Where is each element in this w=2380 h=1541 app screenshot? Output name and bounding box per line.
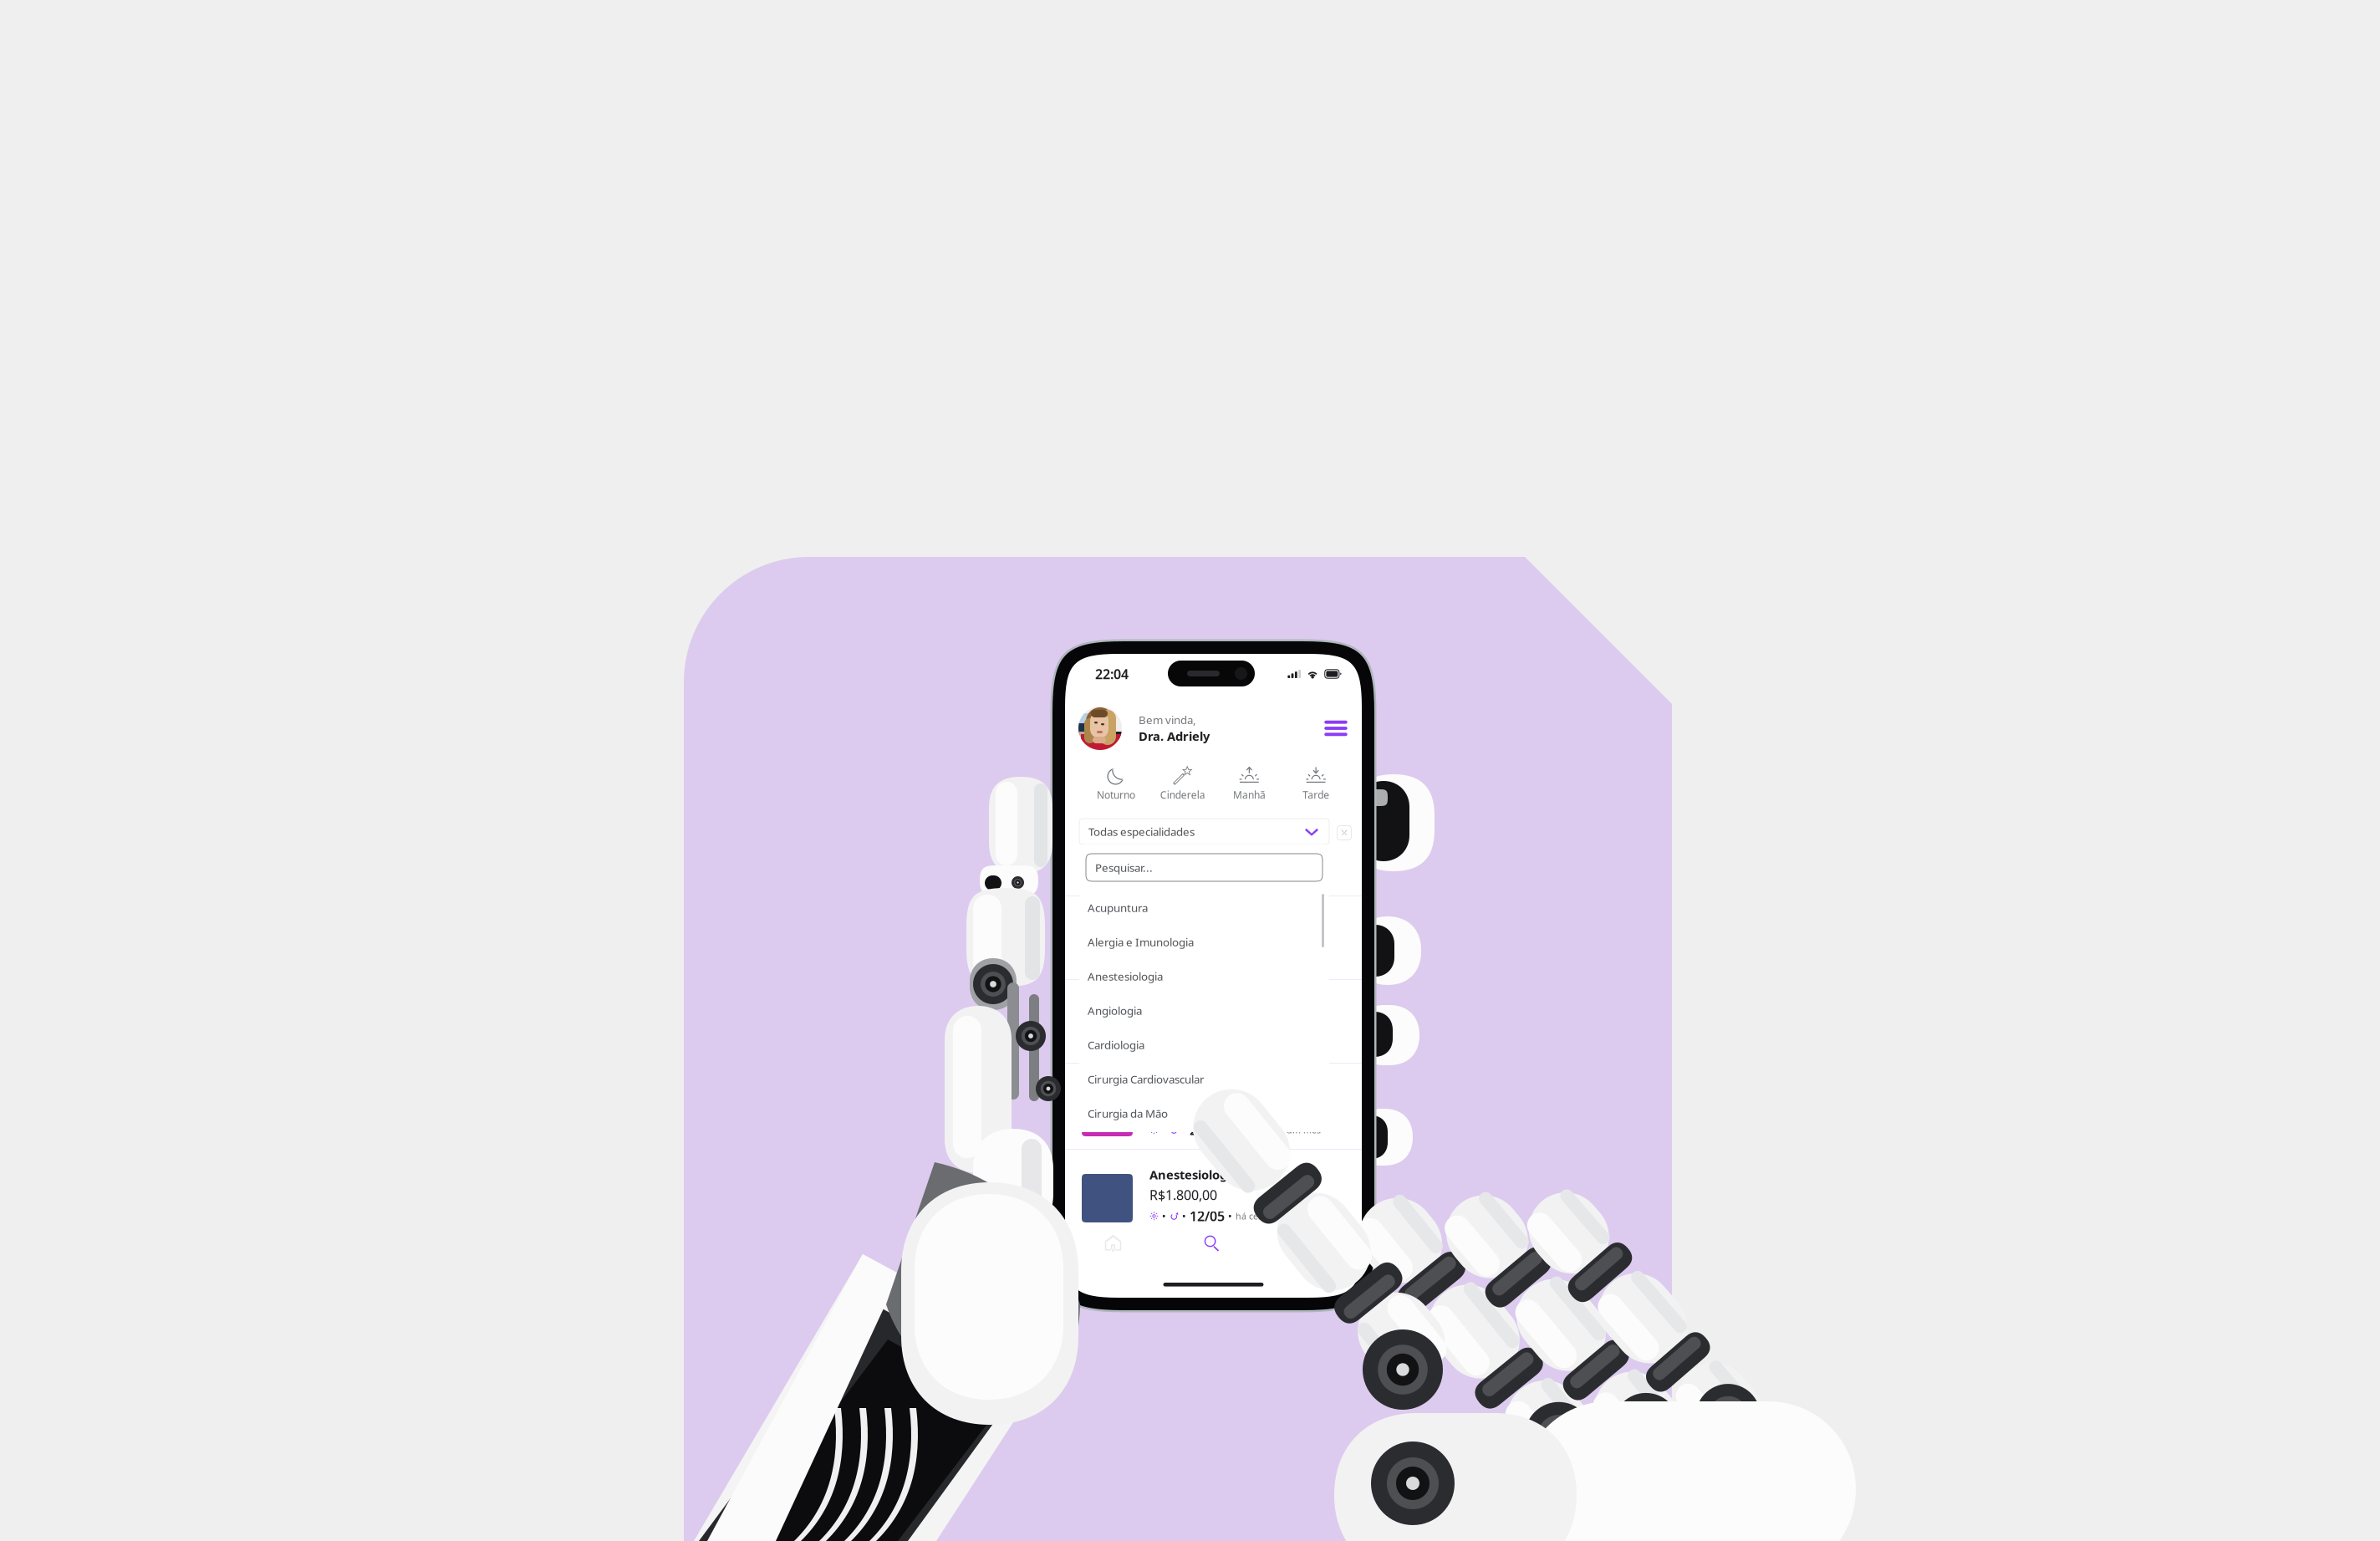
staticText: 20/05 — [1190, 1121, 1225, 1139]
button[interactable]: Clínica Médica — [1065, 812, 1362, 896]
button[interactable]: Buscar — [1203, 1234, 1221, 1252]
button[interactable]: Cardiologia — [1079, 1028, 1329, 1062]
staticText: Cirurgia da Mão — [1088, 1106, 1168, 1121]
staticText: Acupuntura — [1088, 900, 1148, 915]
staticText: • — [1228, 872, 1232, 885]
staticText: • — [1162, 872, 1166, 885]
staticText: há cerca de um mês — [1236, 1124, 1321, 1136]
button[interactable]: Anestesiologia — [1065, 1150, 1362, 1233]
staticText: R$2.000,00 — [1149, 1100, 1217, 1118]
button[interactable]: Acupuntura — [1079, 890, 1329, 925]
staticText: • — [1182, 1209, 1186, 1223]
button[interactable]: Cirurgia Cardiovascular — [1079, 1062, 1329, 1096]
button[interactable]: Pediatria — [1065, 896, 1362, 979]
staticText: Tarde — [1303, 788, 1329, 801]
staticText: Cirurgia Cardiovascular — [1088, 1072, 1205, 1086]
staticText: R$1.200,00 — [1149, 848, 1217, 866]
staticText: há cerca d — [1236, 1210, 1279, 1222]
button[interactable]: Cinderela — [1149, 765, 1216, 802]
button[interactable]: Noturno — [1083, 765, 1149, 802]
staticText: há cerca de um mês — [1236, 872, 1321, 884]
staticText: Anestesiologia — [1149, 1166, 1238, 1183]
staticText: Anestesiologia — [1088, 969, 1163, 984]
staticText: • — [1228, 1209, 1232, 1223]
button[interactable]: Clínica Médica — [1065, 980, 1362, 1063]
staticText: Manhã — [1233, 788, 1266, 801]
button[interactable]: Manhã — [1216, 765, 1283, 802]
staticText: R$1.500,00 — [1149, 933, 1217, 950]
staticText: Todas especialidades — [1088, 824, 1195, 839]
staticText: Noturno — [1097, 788, 1135, 801]
staticText: R$1.800,00 — [1149, 1186, 1217, 1204]
staticText: Cardiologia — [1088, 1037, 1144, 1052]
staticText: Alergia e Imunologia — [1088, 934, 1194, 949]
button[interactable]: Fechar — [1337, 826, 1351, 840]
button[interactable]: Tarde — [1283, 765, 1349, 802]
button[interactable]: Alergia e Imunologia — [1079, 925, 1329, 959]
staticText: Cinderela — [1160, 788, 1205, 801]
button[interactable]: Cirurgia da Mão — [1079, 1096, 1329, 1130]
staticText: • — [1162, 1209, 1166, 1223]
staticText: Ginecologia — [1149, 1080, 1221, 1097]
staticText: Clínica Médica — [1149, 829, 1237, 845]
button[interactable]: Menu — [1323, 716, 1348, 741]
button[interactable]: Início — [1104, 1234, 1122, 1251]
staticText: 12/05 — [1190, 1207, 1225, 1225]
staticText: Pesquisar... — [1095, 860, 1153, 875]
button[interactable]: Angiologia — [1079, 993, 1329, 1028]
staticText: • — [1182, 872, 1186, 885]
staticText: Angiologia — [1088, 1003, 1142, 1018]
staticText: Bem vinda, — [1139, 712, 1196, 727]
staticText: 22:04 — [1095, 665, 1129, 683]
staticText: Dra. Adriely — [1139, 728, 1210, 744]
button[interactable]: Anestesiologia — [1079, 959, 1329, 993]
staticText: 04/05 — [1190, 869, 1225, 887]
button[interactable]: Ginecologia — [1065, 1064, 1362, 1149]
